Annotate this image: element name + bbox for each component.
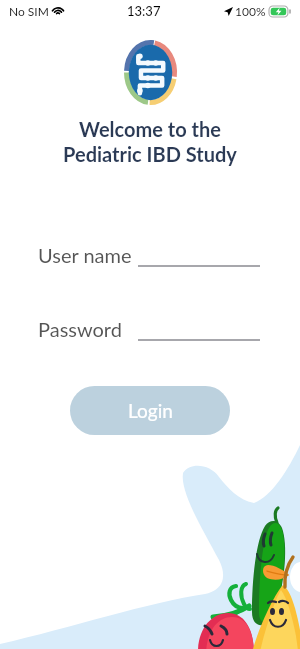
button[interactable]: Login bbox=[70, 386, 230, 435]
staticText: 13:37 bbox=[127, 3, 161, 19]
staticText: 100% bbox=[235, 4, 266, 18]
staticText: No SIM bbox=[9, 4, 49, 18]
staticText: Login bbox=[128, 399, 173, 422]
staticText: Welcome to the Pediatric IBD Study bbox=[0, 117, 300, 167]
staticText: Password bbox=[38, 317, 122, 341]
staticText: User name bbox=[38, 243, 132, 267]
